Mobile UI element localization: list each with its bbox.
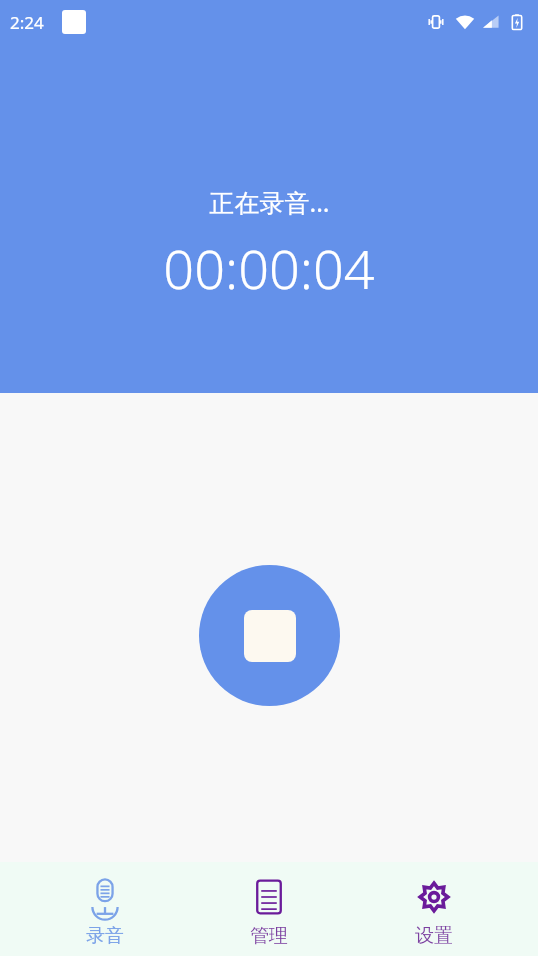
button[interactable]: Record bbox=[45, 862, 165, 956]
staticText: 2:24 bbox=[10, 11, 44, 34]
staticText: 正在录音... bbox=[209, 185, 330, 219]
staticText: 录音 bbox=[86, 924, 124, 948]
button[interactable]: Manage bbox=[209, 862, 329, 956]
button[interactable]: Settings bbox=[374, 862, 494, 956]
staticText: 00:00:04 bbox=[163, 231, 375, 305]
other: Manage bbox=[248, 876, 290, 918]
other: Record bbox=[84, 876, 126, 918]
staticText: 设置 bbox=[415, 924, 453, 948]
button[interactable]: Stop recording bbox=[199, 565, 340, 706]
other: Settings bbox=[413, 876, 455, 918]
staticText: 管理 bbox=[250, 924, 288, 948]
